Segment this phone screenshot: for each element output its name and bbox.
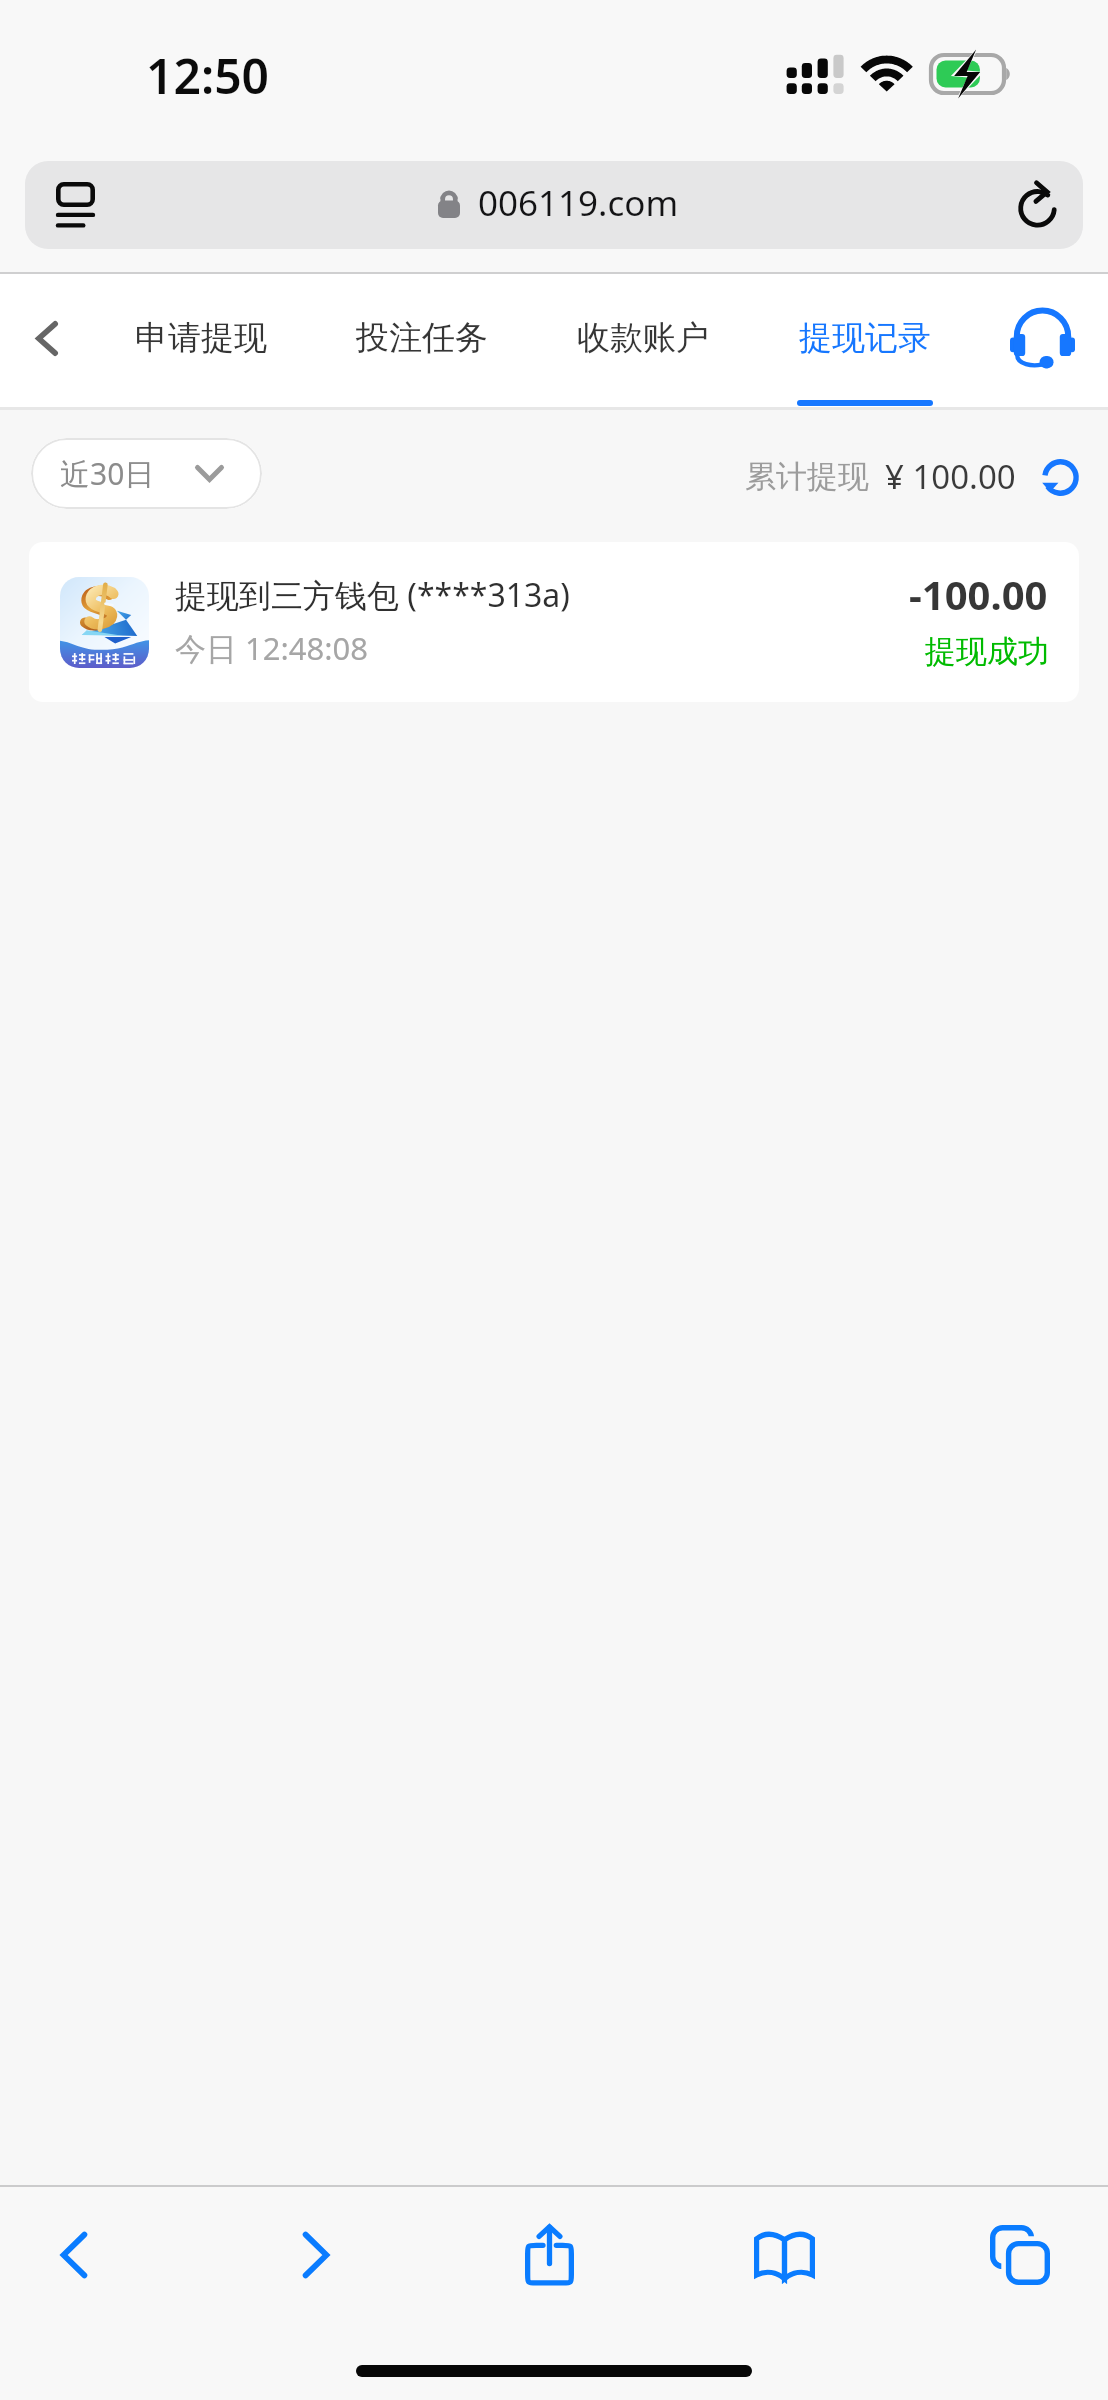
button[interactable]: Back <box>19 2187 129 2323</box>
button[interactable]: Reader view <box>29 161 121 249</box>
staticText: 收款账户 <box>577 317 709 359</box>
button[interactable]: Forward <box>261 2187 371 2323</box>
button[interactable]: 投注任务 <box>322 274 522 407</box>
button[interactable]: Refresh <box>1039 455 1083 499</box>
staticText: 投注任务 <box>356 317 488 359</box>
button[interactable]: Reload page <box>993 161 1083 249</box>
staticText: 12:50 <box>146 43 270 108</box>
button[interactable]: 提现记录 <box>765 274 965 407</box>
staticText: 提现成功 <box>925 632 1049 671</box>
staticText: 提现记录 <box>799 317 931 359</box>
button[interactable]: Bookmarks <box>729 2187 839 2323</box>
button[interactable]: 提现到三方钱包 (****313a) <box>29 542 1079 702</box>
button[interactable]: 近30日 <box>31 438 262 509</box>
button[interactable]: 收款账户 <box>543 274 743 407</box>
staticText: 今日 12:48:08 <box>175 627 369 669</box>
staticText: 提现到三方钱包 (****313a) <box>175 573 570 617</box>
staticText: 近30日 <box>60 453 155 494</box>
button[interactable]: Customer service <box>1000 274 1088 407</box>
staticText: 006119.com <box>478 179 679 227</box>
staticText: ¥ 100.00 <box>885 454 1016 499</box>
button[interactable]: Share <box>494 2187 604 2323</box>
button[interactable]: 申请提现 <box>101 274 301 407</box>
staticText: 累计提现 <box>745 457 869 496</box>
button[interactable]: Tabs <box>965 2187 1075 2323</box>
button[interactable]: Back <box>0 274 94 407</box>
staticText: -100.00 <box>909 567 1048 621</box>
staticText: 申请提现 <box>135 317 267 359</box>
